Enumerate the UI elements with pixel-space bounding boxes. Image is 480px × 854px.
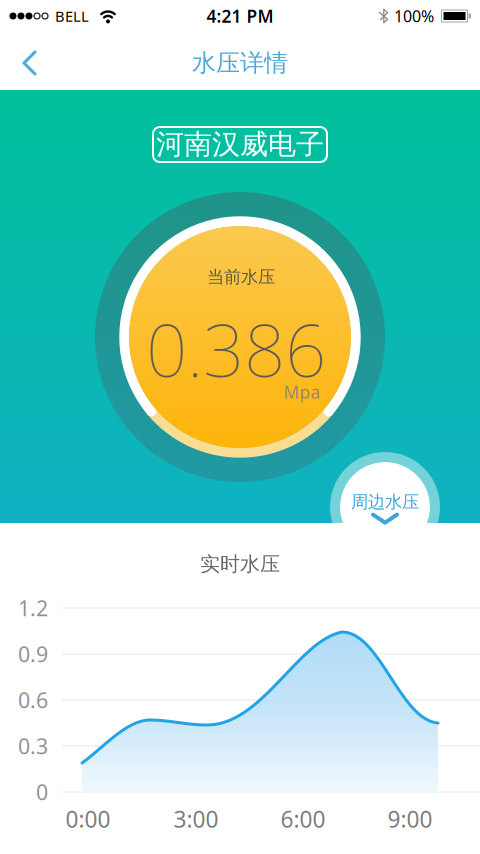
- button[interactable]: 周边水压: [330, 452, 440, 562]
- staticText: 实时水压: [200, 552, 280, 576]
- button[interactable]: Back: [8, 41, 52, 85]
- staticText: 100%: [394, 5, 434, 27]
- button[interactable]: 河南汉威电子: [153, 127, 327, 162]
- staticText: 4:21 PM: [206, 4, 273, 27]
- staticText: 0.9: [18, 640, 48, 668]
- staticText: 0.386: [146, 301, 326, 397]
- staticText: 1.2: [18, 594, 48, 622]
- staticText: 河南汉威电子: [156, 127, 324, 162]
- staticText: 水压详情: [192, 48, 288, 78]
- staticText: 0.3: [18, 732, 48, 760]
- staticText: 9:00: [387, 804, 432, 834]
- staticText: 0: [36, 778, 48, 806]
- staticText: 0:00: [65, 804, 110, 834]
- staticText: 当前水压: [207, 266, 275, 288]
- staticText: 0.6: [18, 686, 48, 714]
- staticText: 周边水压: [351, 491, 419, 513]
- staticText: Mpa: [283, 380, 320, 403]
- staticText: 6:00: [280, 804, 325, 834]
- staticText: BELL: [55, 6, 89, 26]
- staticText: 3:00: [173, 804, 218, 834]
